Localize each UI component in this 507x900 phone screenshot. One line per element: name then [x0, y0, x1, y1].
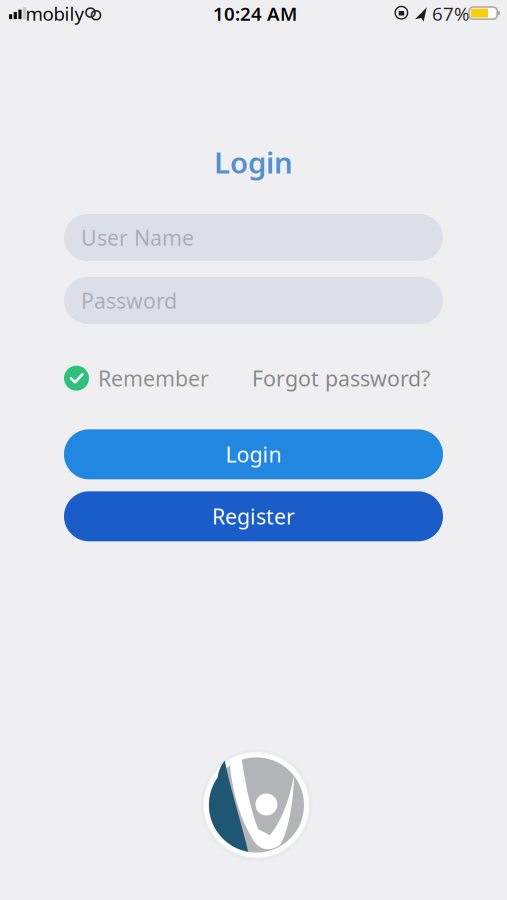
button[interactable]: User Name — [64, 214, 443, 261]
staticText: mobily — [25, 1, 84, 26]
button[interactable]: Login — [64, 429, 443, 479]
staticText: Forgot password? — [252, 364, 430, 392]
staticText: Remember — [98, 364, 209, 392]
staticText: 67% — [432, 1, 470, 26]
staticText: User Name — [81, 223, 194, 252]
button[interactable]: Forgot password? — [252, 364, 443, 392]
staticText: Login — [225, 440, 281, 468]
button[interactable]: Password — [64, 277, 443, 324]
button[interactable]: Register — [64, 491, 443, 541]
staticText: Register — [212, 502, 295, 530]
staticText: Login — [214, 142, 293, 181]
staticText: Password — [81, 286, 177, 315]
button[interactable]: Remember — [64, 364, 209, 392]
staticText: 10:24 AM — [213, 1, 297, 26]
